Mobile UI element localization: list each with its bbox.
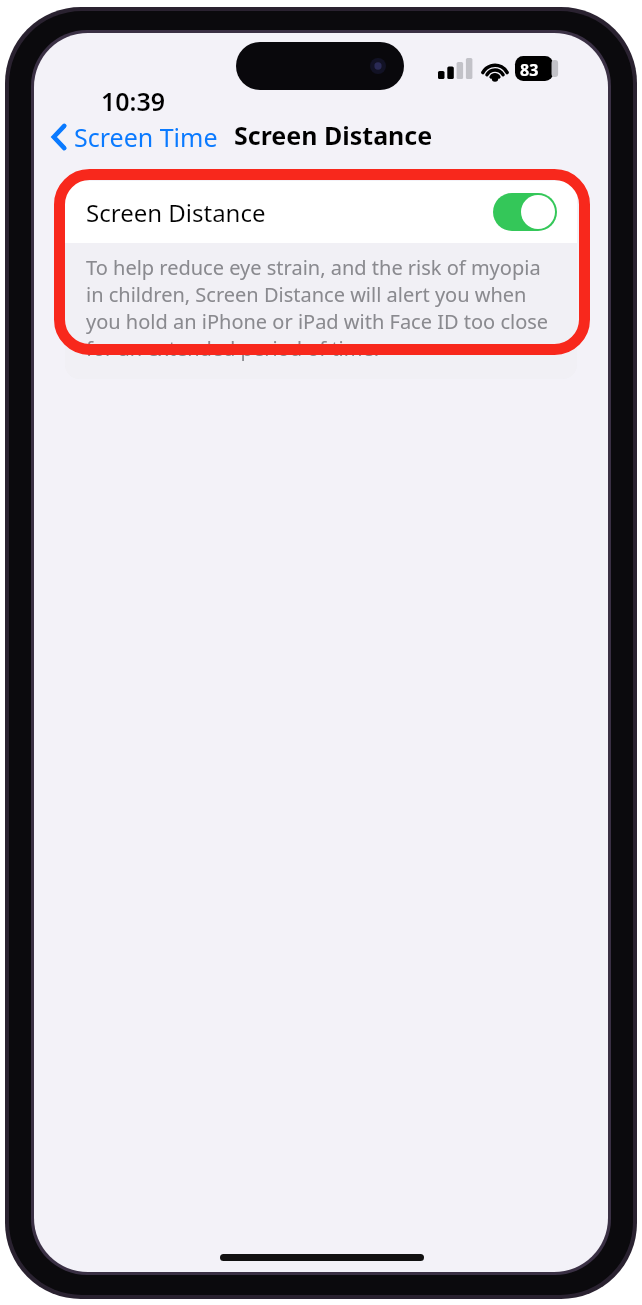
staticText: 83	[520, 59, 539, 81]
button[interactable]: Screen Distance toggle, on	[493, 193, 557, 231]
staticText: 10:39	[101, 84, 166, 118]
staticText: Screen Distance	[86, 196, 266, 229]
staticText: Screen Time	[74, 120, 218, 154]
button[interactable]: Screen Time	[48, 116, 222, 158]
staticText: To help reduce eye strain, and the risk …	[86, 254, 559, 362]
staticText: Screen Distance	[234, 118, 433, 152]
button[interactable]: Screen Distance	[65, 181, 577, 243]
